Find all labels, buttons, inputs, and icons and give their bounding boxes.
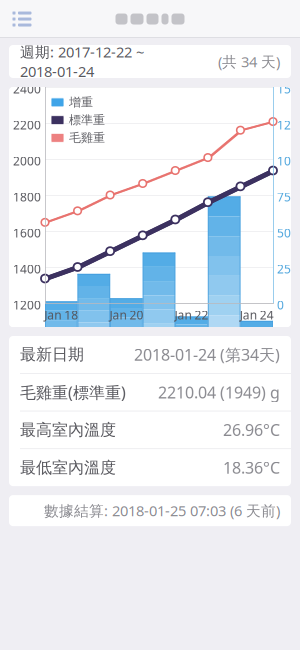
staticText: 1600 bbox=[13, 225, 41, 241]
staticText: Jan 18 bbox=[44, 307, 78, 323]
staticText: 25 bbox=[277, 261, 291, 277]
staticText: 最新日期 bbox=[20, 345, 84, 364]
staticText: 75 bbox=[277, 189, 291, 205]
staticText: 18.36°C bbox=[223, 457, 280, 478]
button[interactable]: Menu bbox=[0, 0, 44, 38]
staticText: 1400 bbox=[13, 261, 41, 277]
staticText: Jan 20 bbox=[109, 307, 143, 323]
staticText: 2200 bbox=[13, 117, 41, 133]
staticText: 標準重 bbox=[69, 113, 105, 127]
staticText: 50 bbox=[277, 225, 291, 241]
staticText: 26.96°C bbox=[223, 419, 280, 440]
staticText: 150 bbox=[277, 81, 298, 97]
staticText: 毛雞重 bbox=[69, 130, 105, 145]
staticText: Jan 22 bbox=[175, 307, 209, 323]
staticText: 最低室內溫度 bbox=[20, 458, 116, 477]
staticText: 最高室內溫度 bbox=[20, 420, 116, 440]
staticText: 100 bbox=[277, 153, 298, 169]
staticText: 2400 bbox=[13, 81, 41, 97]
staticText: 2210.04 (1949) g bbox=[158, 382, 280, 403]
staticText: 2000 bbox=[13, 153, 41, 169]
staticText: 1200 bbox=[13, 297, 41, 313]
staticText: 數據結算: 2018-01-25 07:03 (6 天前) bbox=[44, 501, 280, 520]
staticText: 毛雞重(標準重) bbox=[20, 382, 126, 403]
staticText: 0 bbox=[277, 297, 284, 313]
staticText: 增重 bbox=[69, 95, 93, 110]
staticText: (共 34 天) bbox=[218, 52, 280, 71]
staticText: 1800 bbox=[13, 189, 41, 205]
staticText: 週期: 2017-12-22 ~ 2018-01-24 bbox=[20, 42, 144, 81]
staticText: 125 bbox=[277, 117, 298, 133]
staticText: 2018-01-24 (第34天) bbox=[134, 344, 280, 365]
staticText: Jan 24 bbox=[240, 307, 274, 323]
